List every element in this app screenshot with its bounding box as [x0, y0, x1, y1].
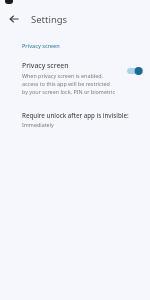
button[interactable]: Back: [5, 10, 23, 28]
button[interactable]: Require unlock after app is invisible:: [0, 110, 150, 132]
button[interactable]: Privacy screen: [0, 60, 150, 99]
staticText: Immediately: [22, 121, 54, 128]
staticText: Privacy screen: [22, 42, 60, 49]
staticText: access to this app will be restricted: [22, 80, 110, 87]
staticText: Require unlock after app is invisible:: [22, 111, 129, 119]
staticText: When privacy screen is enabled,: [22, 72, 103, 79]
button[interactable]: Privacy screen toggle: [126, 65, 144, 77]
staticText: Privacy screen: [22, 61, 69, 70]
staticText: by your screen lock, PIN or biometric: [22, 88, 116, 95]
staticText: Settings: [31, 13, 68, 26]
